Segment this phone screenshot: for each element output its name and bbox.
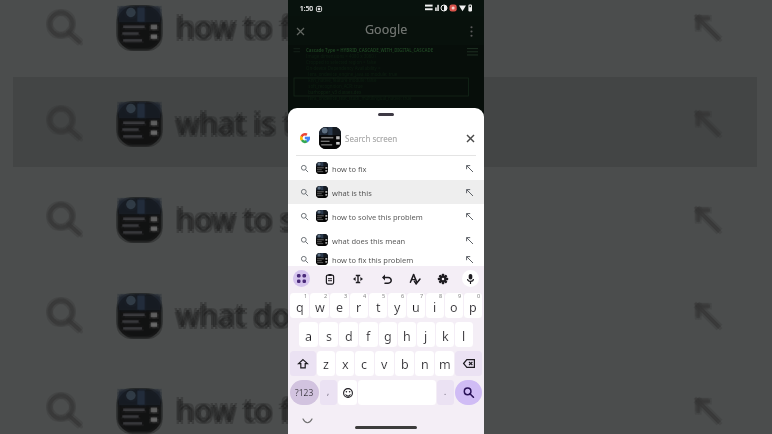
button[interactable]: z — [317, 351, 335, 376]
staticText: k — [442, 328, 449, 345]
staticText: 4 — [363, 293, 367, 299]
staticText: 3 — [344, 293, 348, 299]
staticText: knn_native_feature module: false — [306, 77, 377, 83]
button[interactable]: , — [320, 380, 337, 405]
button[interactable]: y — [388, 293, 406, 318]
button[interactable]: . — [437, 380, 454, 405]
staticText: 8 — [439, 293, 443, 299]
button[interactable]: s — [319, 322, 338, 347]
button[interactable]: b — [395, 351, 414, 376]
staticText: 1 — [304, 293, 308, 299]
button[interactable]: Text editing — [349, 270, 366, 287]
button[interactable]: w — [310, 293, 329, 318]
staticText: 7 — [420, 293, 424, 299]
staticText: 1:50 — [300, 4, 313, 13]
button[interactable]: Voice input — [462, 270, 479, 287]
button[interactable]: what is this — [288, 180, 484, 204]
button[interactable]: c — [355, 351, 374, 376]
staticText: f — [366, 328, 371, 345]
staticText: how to f — [174, 388, 289, 429]
button[interactable]: f — [359, 322, 378, 347]
button[interactable]: how to solve this problem — [288, 204, 484, 228]
staticText: ?123 — [295, 387, 314, 399]
staticText: b — [401, 356, 409, 373]
staticText: how to s — [178, 201, 297, 242]
staticText: what does this mean — [332, 236, 406, 246]
button[interactable]: u — [407, 293, 425, 318]
button[interactable]: More options — [461, 21, 481, 41]
button[interactable]: t — [369, 293, 387, 318]
button[interactable]: o — [445, 293, 463, 318]
button[interactable]: Shift — [290, 351, 316, 376]
button[interactable]: j — [417, 322, 435, 347]
staticText: how to f — [178, 388, 293, 429]
button[interactable]: Undo — [378, 270, 395, 287]
staticText: what do — [176, 295, 291, 336]
staticText: r — [356, 299, 362, 316]
button[interactable]: q — [290, 293, 309, 318]
staticText: how to fix — [332, 164, 367, 174]
button[interactable]: Emoji — [338, 380, 357, 405]
staticText: t — [376, 299, 381, 316]
staticText: what do — [174, 293, 289, 334]
staticText: e — [336, 299, 344, 316]
button[interactable]: Apps — [293, 270, 310, 287]
staticText: u — [412, 299, 420, 316]
staticText: how to solve this problem — [332, 212, 423, 222]
button[interactable]: how to fix — [288, 156, 484, 180]
button[interactable]: Clipboard — [321, 270, 338, 287]
button[interactable]: x — [336, 351, 354, 376]
button[interactable]: r — [350, 293, 368, 318]
button[interactable]: a — [299, 322, 318, 347]
button[interactable]: ?123 — [290, 380, 319, 405]
staticText: what is t — [178, 105, 297, 146]
button[interactable]: p — [464, 293, 482, 318]
staticText: how to f — [178, 9, 293, 50]
button[interactable]: k — [436, 322, 454, 347]
button[interactable]: Backspace — [455, 351, 482, 376]
button[interactable]: what does this mean — [288, 228, 484, 252]
button[interactable]: Handwriting — [406, 270, 423, 287]
button[interactable]: i — [426, 293, 444, 318]
staticText: 0 — [477, 293, 481, 299]
button[interactable]: n — [415, 351, 434, 376]
staticText: how to s — [176, 199, 295, 240]
staticText: how to f — [174, 5, 289, 46]
staticText: 2 — [324, 293, 328, 299]
staticText: lens_ondevice_text_stack_multilingual_na… — [306, 95, 412, 101]
staticText: l — [462, 328, 466, 345]
staticText: 6 — [401, 293, 405, 299]
staticText: what is this — [332, 188, 372, 198]
staticText: what do — [178, 293, 293, 334]
staticText: what is t — [174, 105, 293, 146]
button[interactable]: Settings — [434, 270, 451, 287]
staticText: how to f — [174, 9, 289, 50]
staticText: 5 — [382, 293, 386, 299]
staticText: c — [361, 356, 368, 373]
button[interactable]: how to fix this problem — [288, 252, 484, 266]
staticText: what is t — [174, 101, 293, 142]
staticText: n — [421, 356, 429, 373]
staticText: Search screen — [345, 133, 398, 144]
staticText: a — [305, 328, 313, 345]
staticText: 9 — [458, 293, 462, 299]
button[interactable]: Close — [290, 21, 310, 41]
staticText: how to f — [176, 7, 291, 48]
button[interactable]: m — [435, 351, 454, 376]
button[interactable]: Clear — [461, 129, 479, 147]
staticText: how to s — [174, 197, 293, 238]
staticText: p — [469, 299, 477, 316]
staticText: how to f — [174, 392, 289, 433]
button[interactable]: Search — [455, 380, 482, 405]
staticText: j — [424, 328, 428, 345]
staticText: how to f — [178, 392, 293, 433]
button[interactable]: e — [330, 293, 349, 318]
button[interactable]: g — [379, 322, 397, 347]
button[interactable]: v — [375, 351, 394, 376]
button[interactable]: h — [398, 322, 416, 347]
button[interactable]: d — [339, 322, 358, 347]
button[interactable]: l — [455, 322, 473, 347]
